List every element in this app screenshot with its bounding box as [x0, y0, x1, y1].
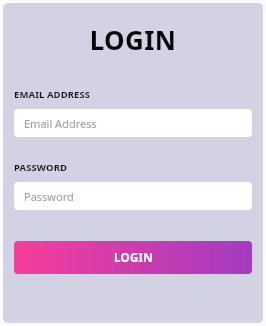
- staticText: PASSWORD: [14, 161, 68, 174]
- button[interactable]: LOGIN: [14, 241, 252, 274]
- staticText: LOGIN: [14, 22, 252, 57]
- staticText: LOGIN: [114, 250, 153, 266]
- button[interactable]: Email address input field: [14, 109, 252, 137]
- staticText: Password: [24, 189, 74, 204]
- staticText: EMAIL ADDRESS: [14, 88, 91, 101]
- staticText: Email Address: [24, 116, 97, 131]
- button[interactable]: Password input field: [14, 182, 252, 210]
